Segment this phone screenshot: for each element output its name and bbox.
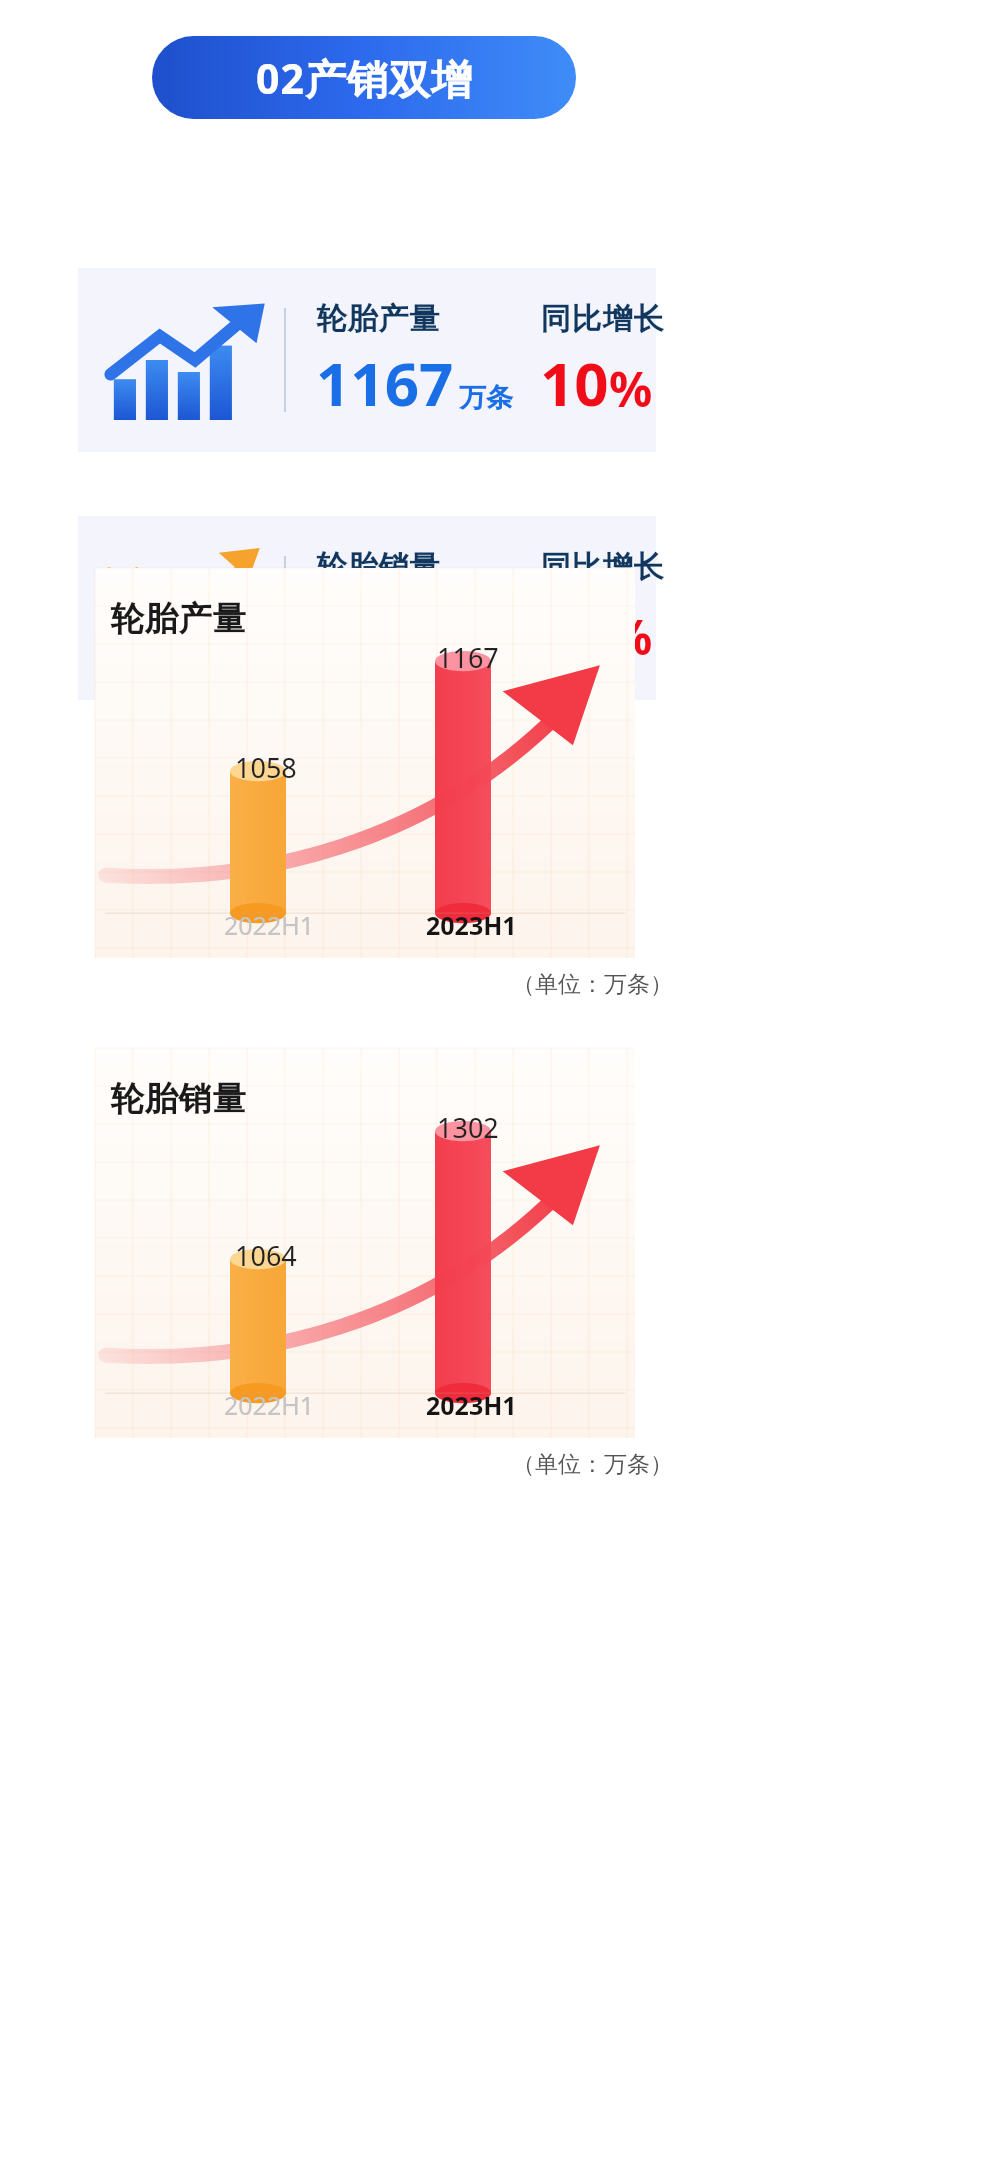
staticText: % <box>609 604 653 669</box>
staticText: 1167 <box>316 342 454 424</box>
other: Production growth icon <box>104 300 268 420</box>
other: Sales growth icon <box>104 548 268 668</box>
staticText: 2022H1 <box>224 908 315 942</box>
button[interactable]: 02产销双增 <box>152 36 576 119</box>
button[interactable]: 轮胎产量 <box>0 558 1000 1028</box>
staticText: 1302 <box>316 590 454 672</box>
staticText: 万条 <box>459 629 513 663</box>
staticText: 1302 <box>437 1109 499 1146</box>
staticText: 万条 <box>459 381 513 415</box>
staticText: （单位：万条） <box>512 970 673 999</box>
button[interactable]: Sales growth icon <box>78 516 656 700</box>
staticText: % <box>609 356 653 421</box>
staticText: 22 <box>540 590 609 672</box>
staticText: 2022H1 <box>224 1388 315 1422</box>
staticText: 1064 <box>235 1237 297 1274</box>
staticText: 1167 <box>437 639 499 676</box>
staticText: 02产销双增 <box>256 50 473 106</box>
staticText: 10 <box>540 342 609 424</box>
staticText: 同比增长 <box>540 548 664 586</box>
staticText: 2023H1 <box>426 908 517 942</box>
staticText: 轮胎销量 <box>110 1078 246 1120</box>
button[interactable]: Production growth icon <box>78 268 656 452</box>
staticText: 轮胎产量 <box>110 598 246 640</box>
staticText: （单位：万条） <box>512 1450 673 1479</box>
staticText: 2023H1 <box>426 1388 517 1422</box>
staticText: 轮胎产量 <box>316 300 440 338</box>
staticText: 1058 <box>235 749 297 786</box>
staticText: 同比增长 <box>540 300 664 338</box>
button[interactable]: 轮胎销量 <box>0 1038 1000 1508</box>
staticText: 轮胎销量 <box>316 548 440 586</box>
